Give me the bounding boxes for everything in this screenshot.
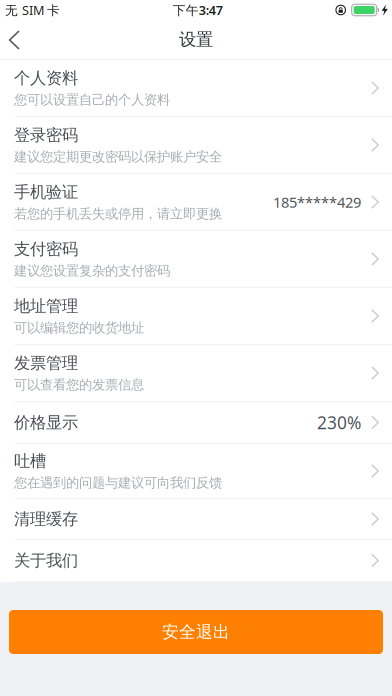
staticText: 若您的手机丢失或停用，请立即更换 <box>14 205 222 222</box>
staticText: 发票管理 <box>14 353 78 373</box>
button[interactable]: 地址管理 <box>0 288 392 344</box>
staticText: 关于我们 <box>14 550 78 571</box>
button[interactable]: 个人资料 <box>0 60 392 116</box>
staticText: 您可以设置自己的个人资料 <box>14 91 170 108</box>
button[interactable]: 价格显示 <box>0 402 392 443</box>
staticText: 无 SIM 卡 <box>5 1 60 19</box>
staticText: 230% <box>317 411 361 434</box>
button[interactable]: 吐槽 <box>0 444 392 498</box>
button[interactable]: 发票管理 <box>0 345 392 401</box>
button[interactable]: 安全退出 <box>9 610 383 654</box>
staticText: 下午3:47 <box>173 1 223 19</box>
button[interactable]: 手机验证 <box>0 174 392 230</box>
staticText: 您在遇到的问题与建议可向我们反馈 <box>14 474 222 491</box>
staticText: 安全退出 <box>162 621 230 642</box>
staticText: 可以编辑您的收货地址 <box>14 319 144 336</box>
staticText: 可以查看您的发票信息 <box>14 376 144 393</box>
staticText: 吐槽 <box>14 451 46 471</box>
staticText: 价格显示 <box>14 412 78 433</box>
button[interactable]: 清理缓存 <box>0 499 392 539</box>
staticText: 设置 <box>179 29 213 50</box>
staticText: 清理缓存 <box>14 509 78 529</box>
staticText: 185*****429 <box>273 192 361 212</box>
button[interactable]: 登录密码 <box>0 117 392 173</box>
staticText: 登录密码 <box>14 125 78 145</box>
button[interactable]: 支付密码 <box>0 231 392 287</box>
staticText: 手机验证 <box>14 182 78 202</box>
staticText: 建议您定期更改密码以保护账户安全 <box>14 148 222 165</box>
staticText: 建议您设置复杂的支付密码 <box>14 262 170 279</box>
button[interactable]: Back <box>0 20 38 59</box>
button[interactable]: 关于我们 <box>0 540 392 581</box>
staticText: 地址管理 <box>14 296 78 316</box>
staticText: 支付密码 <box>14 239 78 259</box>
staticText: 个人资料 <box>14 68 78 88</box>
